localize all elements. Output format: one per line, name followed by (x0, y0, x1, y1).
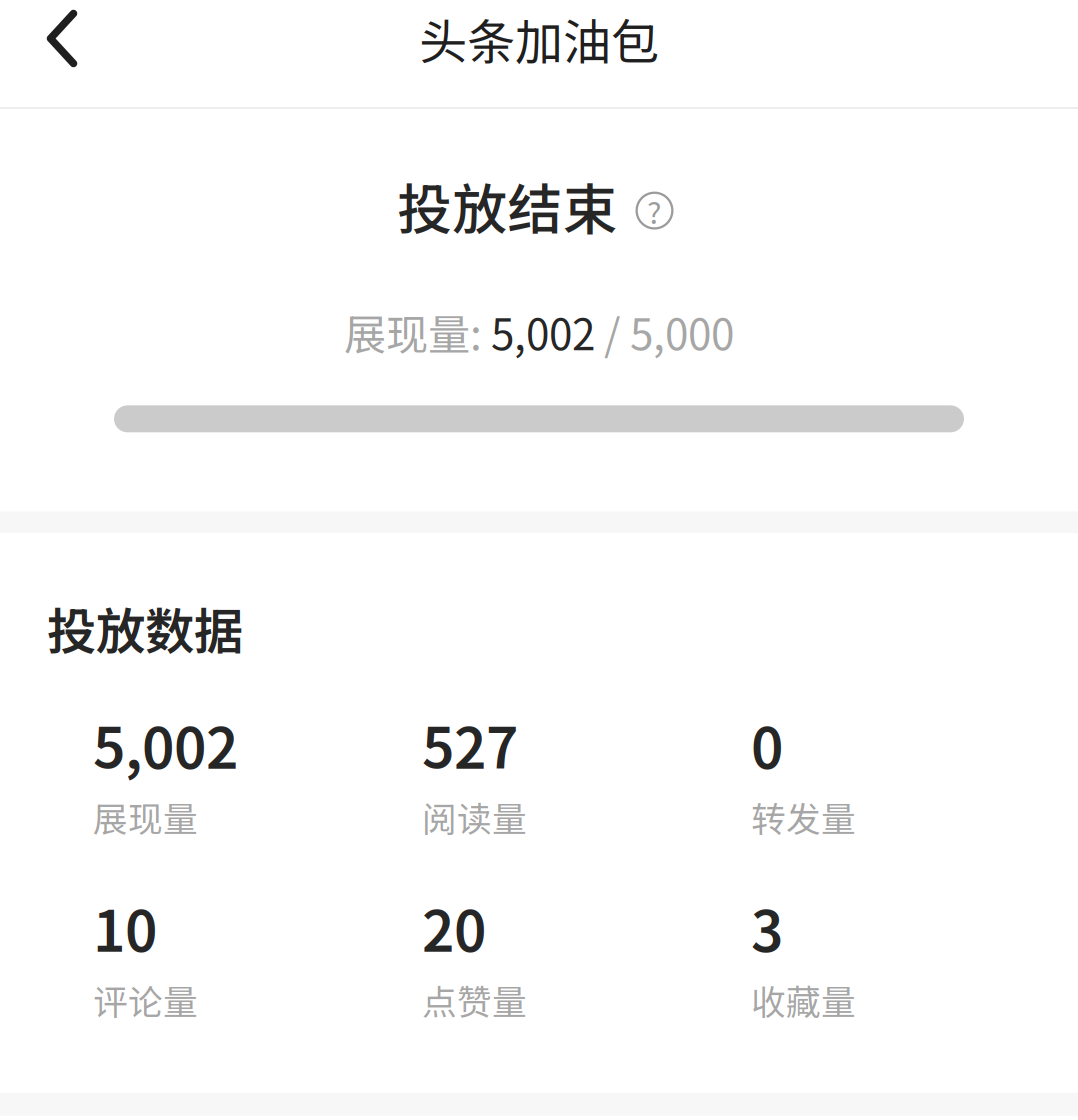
staticText: 评论量 (93, 975, 198, 1025)
staticText: 5,002 (93, 704, 238, 785)
staticText: 转发量 (751, 792, 856, 842)
staticText: 展现量 (93, 792, 198, 842)
staticText: 投放数据 (47, 592, 243, 664)
staticText: / 5,000 (595, 301, 734, 362)
staticText: 投放结束 (397, 166, 617, 245)
button[interactable]: Back (0, 0, 110, 77)
staticText: 展现量: (344, 301, 491, 362)
staticText: 10 (93, 887, 157, 968)
staticText: 3 (751, 887, 783, 968)
staticText: 527 (422, 704, 518, 785)
button[interactable]: About delivery status (635, 182, 673, 230)
staticText: ? (647, 188, 662, 233)
staticText: 0 (751, 704, 783, 785)
staticText: 5,002 (491, 301, 595, 362)
staticText: 阅读量 (422, 792, 527, 842)
staticText: 收藏量 (751, 975, 856, 1025)
staticText: 点赞量 (422, 975, 527, 1025)
staticText: 头条加油包 (419, 4, 659, 73)
staticText: 20 (422, 887, 486, 968)
